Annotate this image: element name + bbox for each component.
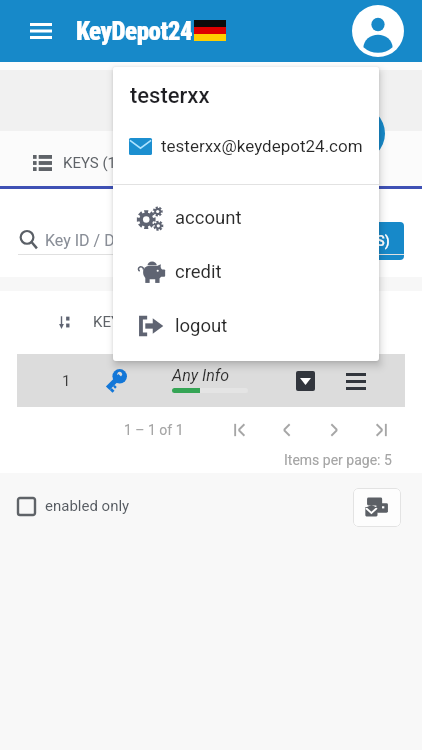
button[interactable]: Previous page <box>276 419 298 441</box>
staticText: KEY <box>93 313 120 331</box>
button[interactable]: testerxx@keydepot24.com <box>113 126 379 166</box>
staticText: KEYS (1) <box>63 154 122 172</box>
button[interactable]: 1 <box>17 354 405 407</box>
button[interactable]: Add <box>330 106 385 161</box>
button[interactable]: enabled only <box>18 490 130 522</box>
staticText: Items per page: 5 <box>284 452 392 468</box>
button[interactable]: logout <box>113 299 379 353</box>
button[interactable]: KEYS (1) <box>33 135 122 190</box>
staticText: Any Info <box>172 366 230 385</box>
staticText: ADD KEY(S) <box>315 233 390 249</box>
button[interactable]: Send bulk mail <box>353 488 401 527</box>
button[interactable]: Row actions <box>346 373 366 390</box>
button[interactable]: Expand row <box>296 371 315 391</box>
button[interactable]: Open navigation menu <box>19 9 63 53</box>
button[interactable]: Next page <box>323 419 345 441</box>
button[interactable]: credit <box>113 245 379 299</box>
staticText: enabled only <box>45 497 130 515</box>
staticText: 1 <box>62 372 71 390</box>
staticText: credit <box>175 261 222 283</box>
button[interactable]: First page <box>229 419 251 441</box>
staticText: account <box>175 207 242 229</box>
button[interactable]: Account <box>352 5 404 57</box>
staticText: 1 – 1 of 1 <box>124 422 184 438</box>
staticText: testerxx <box>130 83 210 109</box>
button[interactable]: ADD KEY(S) <box>300 222 404 260</box>
staticText: KeyDepot24 <box>76 17 193 46</box>
button[interactable]: Last page <box>370 419 392 441</box>
button[interactable]: account <box>113 191 379 245</box>
staticText: logout <box>175 315 228 337</box>
staticText: Key ID / Description <box>45 231 186 250</box>
staticText: testerxx@keydepot24.com <box>161 136 363 156</box>
